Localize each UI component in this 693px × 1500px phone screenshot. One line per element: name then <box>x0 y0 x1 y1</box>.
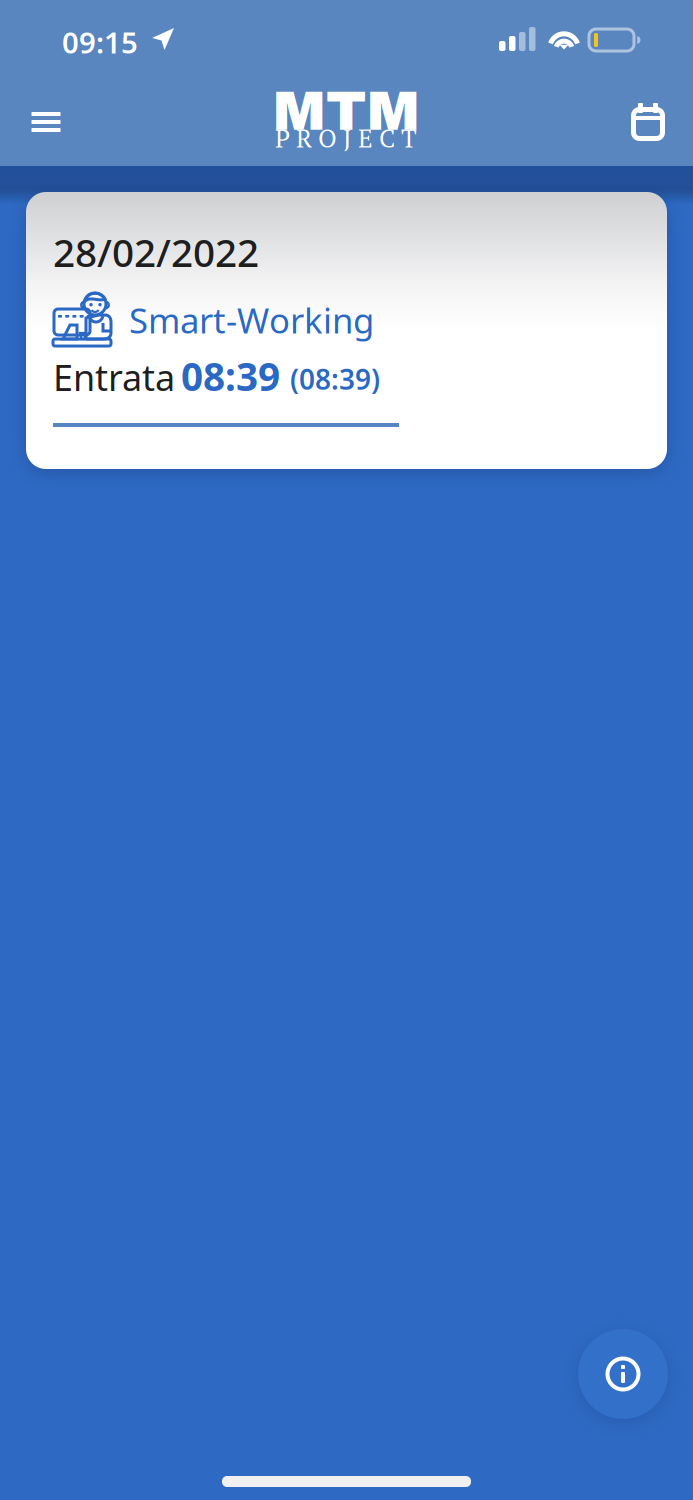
staticText: Smart-Working <box>129 297 374 343</box>
button[interactable]: Calendar <box>617 91 679 153</box>
button[interactable]: Info <box>578 1329 668 1419</box>
staticText: P R O J E C T <box>275 121 417 155</box>
staticText: 09:15 <box>62 22 138 61</box>
staticText: Entrata <box>53 353 175 401</box>
staticText: 08:39 <box>181 350 280 402</box>
staticText: (08:39) <box>290 360 380 398</box>
button[interactable]: Menu <box>15 91 77 153</box>
staticText: MTM <box>272 80 420 141</box>
staticText: 28/02/2022 <box>53 226 259 278</box>
